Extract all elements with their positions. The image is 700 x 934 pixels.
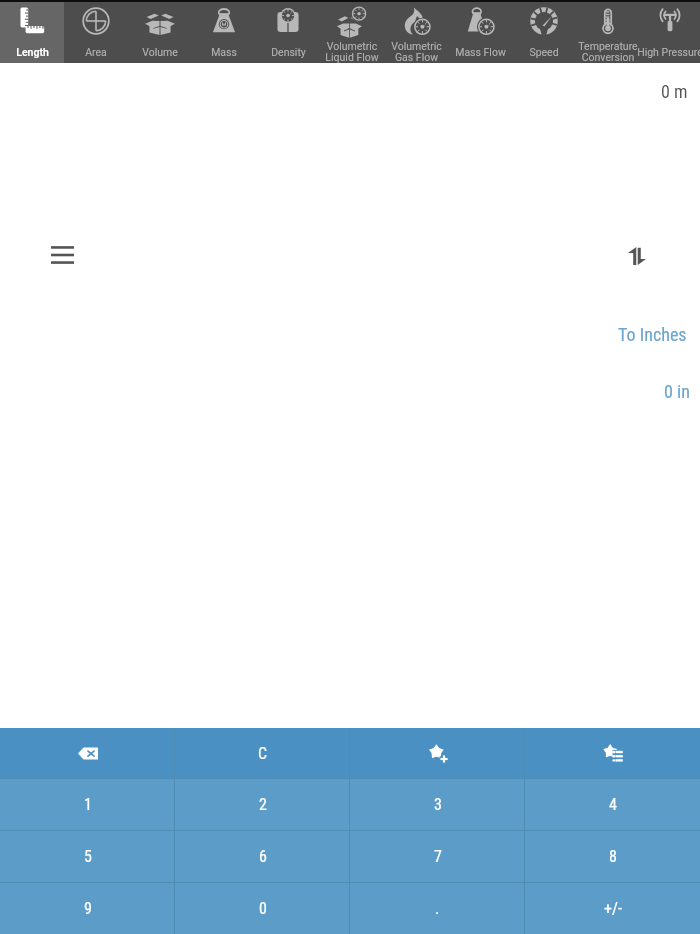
staticText: 5 bbox=[84, 847, 92, 866]
button[interactable]: 5 bbox=[0, 831, 175, 882]
other: Add favourite bbox=[350, 728, 525, 778]
staticText: High Pressure bbox=[637, 46, 700, 58]
button[interactable]: 0 m bbox=[0, 81, 688, 102]
button[interactable]: 8 bbox=[525, 831, 700, 882]
button[interactable]: 0 bbox=[175, 883, 350, 934]
staticText: Density bbox=[271, 46, 306, 58]
button[interactable]: Menu bbox=[42, 235, 82, 275]
button[interactable]: 3 bbox=[350, 779, 525, 830]
button[interactable]: Volumetric Liquid Flow bbox=[320, 2, 384, 63]
staticText: Volume bbox=[142, 46, 178, 58]
button[interactable]: Favourites list bbox=[525, 728, 700, 778]
button[interactable]: High Pressure bbox=[640, 2, 700, 63]
staticText: C bbox=[258, 744, 268, 763]
staticText: 3 bbox=[434, 795, 442, 814]
staticText: Temperature Conversion bbox=[578, 40, 638, 63]
staticText: 7 bbox=[434, 847, 442, 866]
staticText: 2 bbox=[259, 795, 267, 814]
staticText: . bbox=[435, 899, 440, 918]
button[interactable]: 9 bbox=[0, 883, 175, 934]
button[interactable]: 2 bbox=[175, 779, 350, 830]
button[interactable]: C bbox=[175, 728, 350, 778]
button[interactable]: Mass bbox=[192, 2, 256, 63]
button[interactable]: Speed bbox=[512, 2, 576, 63]
button[interactable]: Add favourite bbox=[350, 728, 525, 778]
staticText: Mass bbox=[211, 46, 237, 58]
button[interactable]: To Inches bbox=[0, 324, 687, 345]
button[interactable]: Backspace bbox=[0, 728, 175, 778]
staticText: 4 bbox=[609, 795, 617, 814]
staticText: 9 bbox=[84, 899, 92, 918]
button[interactable]: Mass Flow bbox=[448, 2, 512, 63]
button[interactable]: 6 bbox=[175, 831, 350, 882]
staticText: 0 in bbox=[664, 381, 690, 402]
staticText: Speed bbox=[529, 46, 559, 58]
button[interactable]: Area bbox=[64, 2, 128, 63]
staticText: Volumetric Gas Flow bbox=[391, 40, 442, 63]
other: Favourites list bbox=[525, 728, 700, 778]
staticText: 0 bbox=[259, 899, 267, 918]
staticText: +/- bbox=[604, 899, 622, 918]
button[interactable]: 1 bbox=[0, 779, 175, 830]
staticText: 1 bbox=[84, 795, 92, 814]
button[interactable]: 4 bbox=[525, 779, 700, 830]
button[interactable]: Volume bbox=[128, 2, 192, 63]
button[interactable]: Temperature Conversion bbox=[576, 2, 640, 63]
button[interactable]: Volumetric Gas Flow bbox=[384, 2, 448, 63]
staticText: Volumetric Liquid Flow bbox=[325, 40, 379, 63]
button[interactable]: Swap units bbox=[617, 236, 657, 276]
staticText: Mass Flow bbox=[455, 46, 506, 58]
staticText: Area bbox=[85, 46, 107, 58]
button[interactable]: Density bbox=[256, 2, 320, 63]
staticText: 6 bbox=[259, 847, 267, 866]
staticText: 0 m bbox=[661, 81, 688, 102]
button[interactable]: Length bbox=[0, 2, 64, 63]
button[interactable]: 0 in bbox=[0, 381, 690, 402]
other: Backspace bbox=[0, 728, 175, 778]
staticText: To Inches bbox=[618, 324, 687, 345]
staticText: Length bbox=[16, 46, 49, 58]
staticText: 8 bbox=[609, 847, 617, 866]
button[interactable]: +/- bbox=[525, 883, 700, 934]
button[interactable]: 7 bbox=[350, 831, 525, 882]
